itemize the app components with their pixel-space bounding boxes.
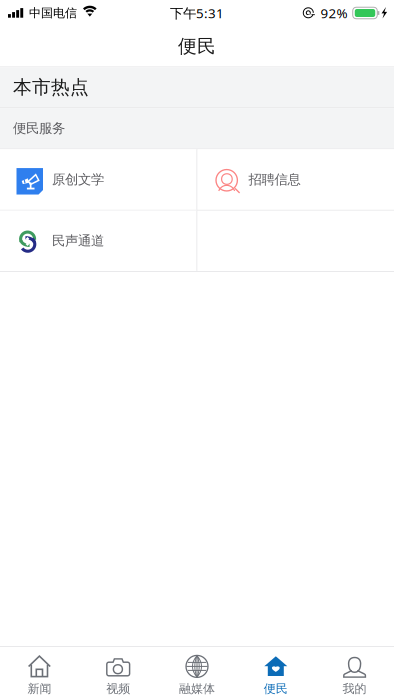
staticText: 便民 — [264, 681, 288, 696]
button[interactable]: 便民 — [0, 26, 394, 66]
staticText: 招聘信息 — [248, 171, 300, 188]
button[interactable]: 我的 — [315, 647, 394, 700]
staticText: 便民服务 — [13, 120, 65, 136]
button[interactable]: 民声通道 — [0, 211, 196, 271]
staticText: 下午5:31 — [170, 4, 224, 22]
staticText: 视频 — [106, 681, 130, 696]
button[interactable]: 招聘信息 — [197, 149, 394, 210]
staticText: 便民 — [178, 35, 216, 58]
staticText: 92% — [320, 4, 347, 22]
staticText: 新闻 — [27, 681, 51, 696]
button[interactable]: 融媒体 — [158, 647, 236, 700]
staticText: 本市热点 — [13, 76, 89, 99]
button[interactable]: 便民 — [236, 647, 315, 700]
staticText: 我的 — [343, 681, 367, 696]
staticText: 中国电信 — [29, 6, 77, 20]
staticText: 融媒体 — [179, 681, 215, 696]
button[interactable]: 视频 — [79, 647, 158, 700]
button[interactable]: 原创文学 — [0, 149, 196, 210]
button[interactable]: 新闻 — [0, 647, 79, 700]
staticText: 民声通道 — [52, 233, 104, 249]
staticText: 原创文学 — [52, 171, 104, 188]
